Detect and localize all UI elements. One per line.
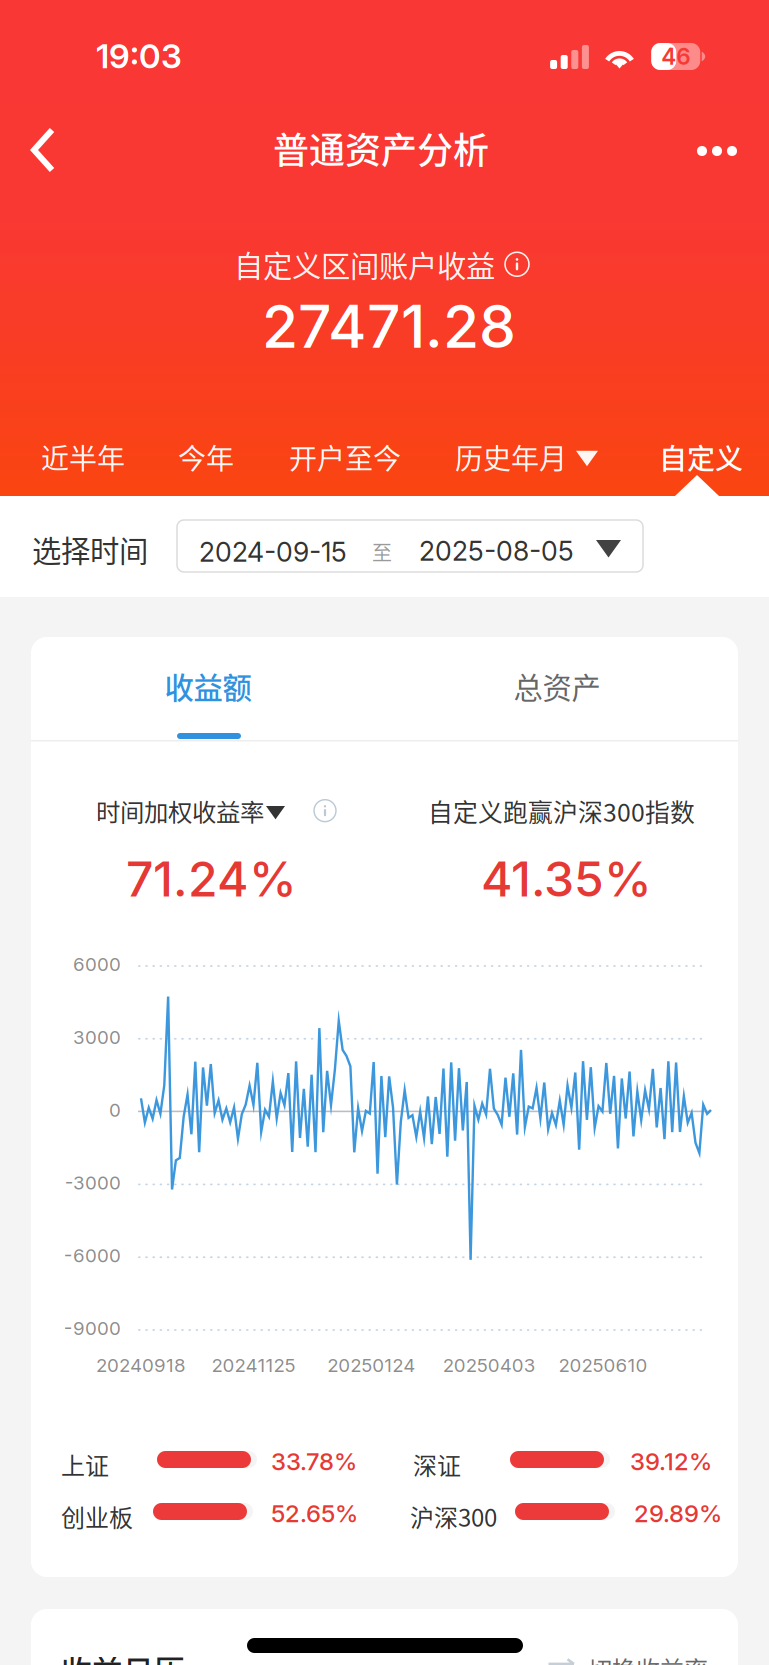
staticText: 切换收益率 (588, 1651, 708, 1665)
staticText: 开户至今 (289, 437, 401, 477)
staticText: 普通资产分析 (273, 122, 489, 174)
staticText: 52.65% (271, 1499, 358, 1528)
button[interactable]: 2024-09-15 (177, 520, 643, 572)
staticText: 27471.28 (262, 291, 516, 362)
button[interactable]: 收益额 (97, 647, 319, 725)
staticText: 33.78% (271, 1447, 357, 1476)
staticText: 46 (661, 43, 690, 70)
staticText: 收益日历 (61, 1647, 185, 1665)
staticText: 时间加权收益率 (96, 793, 264, 828)
staticText: 选择时间 (32, 528, 148, 570)
staticText: 71.24% (126, 850, 297, 908)
staticText: 上证 (61, 1447, 109, 1482)
staticText: 沪深300 (410, 1499, 497, 1534)
button[interactable]: 总资产 (446, 647, 668, 725)
staticText: 20241125 (212, 1354, 296, 1377)
button[interactable]: 近半年 (31, 422, 135, 492)
staticText: 29.89% (634, 1499, 722, 1528)
staticText: 自定义跑赢沪深300指数 (428, 793, 695, 829)
staticText: 19:03 (96, 36, 182, 76)
staticText: -9000 (64, 1317, 121, 1340)
staticText: 总资产 (513, 665, 600, 707)
staticText: 2025-08-05 (419, 535, 574, 567)
staticText: 今年 (178, 437, 234, 477)
staticText: 20250610 (558, 1354, 647, 1377)
staticText: -3000 (65, 1171, 121, 1194)
staticText: 41.35% (481, 850, 652, 908)
staticText: 历史年月 (455, 437, 567, 477)
staticText: 20250124 (327, 1354, 415, 1377)
staticText: 近半年 (41, 437, 125, 477)
staticText: 自定义 (659, 437, 743, 477)
staticText: 6000 (73, 953, 121, 976)
staticText: 20240918 (96, 1354, 186, 1377)
button[interactable]: 今年 (168, 422, 244, 492)
button[interactable]: 切换收益率 (535, 1639, 720, 1665)
button[interactable]: 更多 (675, 118, 759, 184)
staticText: 至 (372, 537, 392, 566)
staticText: 深证 (413, 1447, 461, 1482)
staticText: 收益额 (164, 665, 251, 707)
button[interactable]: 返回 (9, 105, 77, 195)
staticText: 39.12% (630, 1447, 712, 1476)
button[interactable]: 历史年月 (449, 422, 604, 492)
button[interactable]: 开户至今 (279, 422, 411, 492)
staticText: 3000 (73, 1026, 121, 1048)
staticText: 0 (109, 1099, 121, 1121)
staticText: -6000 (64, 1244, 121, 1267)
staticText: 20250403 (443, 1354, 536, 1377)
staticText: 自定义区间账户收益 (234, 243, 495, 285)
staticText: 创业板 (61, 1499, 133, 1534)
button[interactable]: 自定义 (649, 422, 753, 492)
staticText: 2024-09-15 (199, 536, 347, 568)
